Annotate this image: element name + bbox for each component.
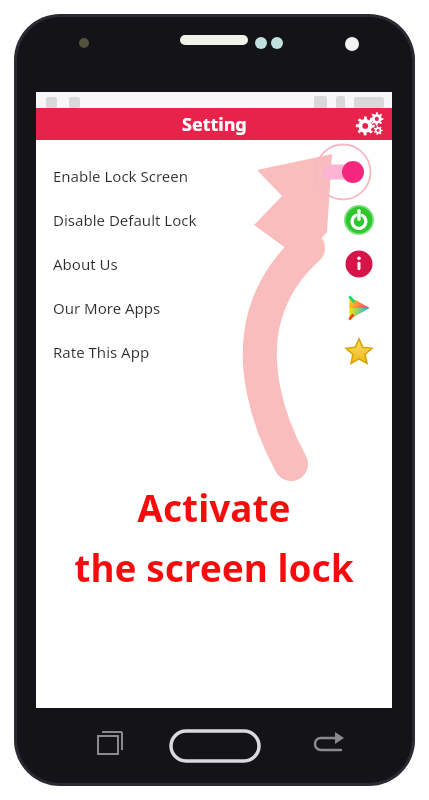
- button[interactable]: Enable Lock Screen toggle: [314, 143, 372, 201]
- staticText: the screen lock: [74, 542, 354, 592]
- staticText: Rate This App: [53, 342, 150, 362]
- button[interactable]: Disable Default Lock: [36, 198, 392, 242]
- button[interactable]: Enable Lock Screen: [36, 154, 392, 198]
- staticText: Activate: [137, 482, 291, 532]
- button[interactable]: Rate This App: [36, 330, 392, 374]
- button[interactable]: Our More Apps: [36, 286, 392, 330]
- button[interactable]: About Us: [36, 242, 392, 286]
- staticText: About Us: [53, 254, 118, 274]
- button[interactable]: Settings: [353, 108, 387, 140]
- staticText: Our More Apps: [53, 298, 161, 318]
- staticText: Disable Default Lock: [53, 210, 197, 230]
- staticText: Setting: [182, 112, 247, 137]
- staticText: Enable Lock Screen: [53, 166, 189, 186]
